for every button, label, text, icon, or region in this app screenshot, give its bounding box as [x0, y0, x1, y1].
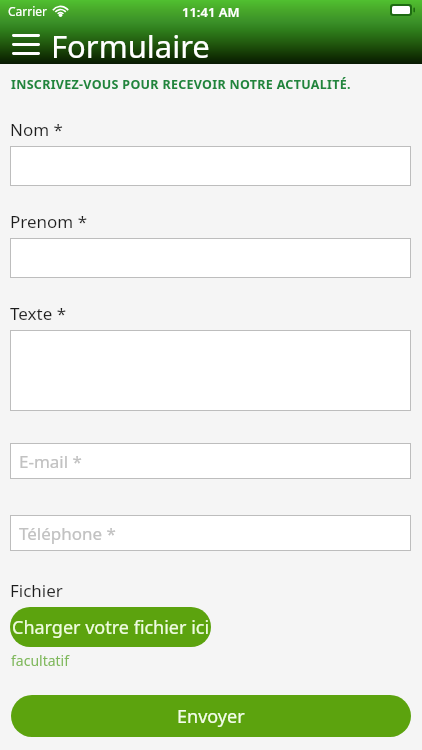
staticText: Prenom * [10, 210, 88, 233]
staticText: INSCRIVEZ-VOUS POUR RECEVOIR NOTRE ACTUA… [11, 76, 351, 93]
staticText: Carrier [8, 3, 48, 19]
staticText: 11:41 AM [182, 3, 240, 21]
button[interactable] [10, 238, 411, 278]
staticText: facultatif [11, 651, 70, 670]
staticText: E-mail * [19, 450, 82, 473]
staticText: Envoyer [177, 704, 245, 729]
button[interactable]: Charger votre fichier ici [10, 607, 211, 647]
staticText: Fichier [10, 579, 63, 602]
staticText: Formulaire [51, 25, 210, 67]
staticText: Téléphone * [19, 522, 116, 545]
button[interactable]: Envoyer [11, 695, 411, 737]
staticText: Texte * [10, 302, 67, 325]
staticText: Charger votre fichier ici [12, 615, 210, 640]
button[interactable]: Menu [6, 30, 45, 58]
button[interactable] [10, 146, 411, 186]
button[interactable] [10, 330, 411, 411]
button[interactable]: E-mail * [10, 443, 411, 479]
staticText: Nom * [10, 118, 63, 141]
button[interactable]: Téléphone * [10, 515, 411, 551]
